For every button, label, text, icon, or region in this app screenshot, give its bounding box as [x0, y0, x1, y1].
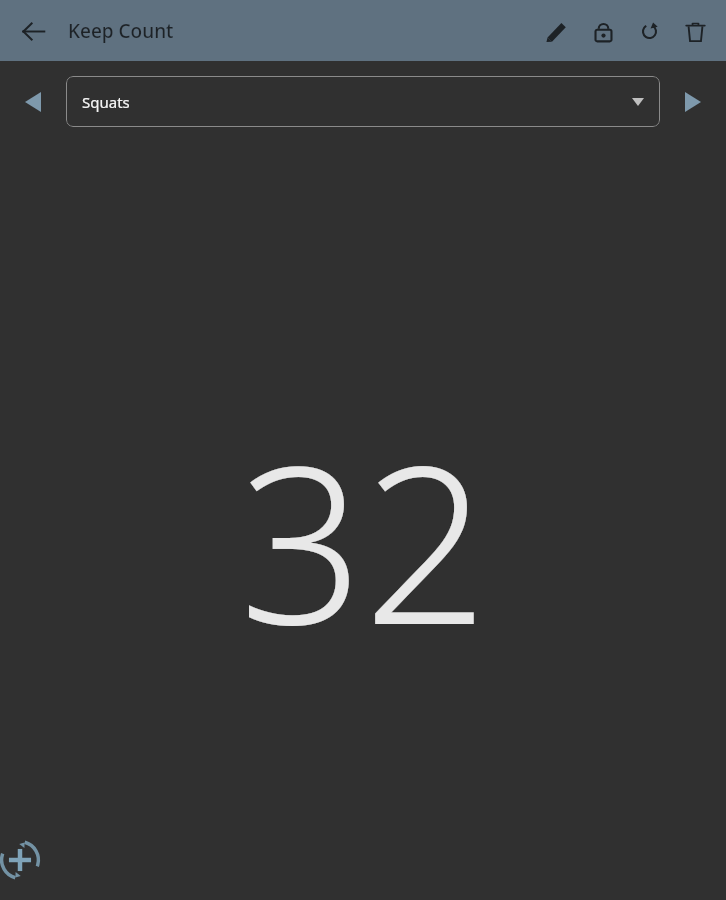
button[interactable]: Next counter [660, 77, 726, 127]
staticText: 32 [239, 391, 488, 688]
staticText: Keep Count [68, 18, 174, 44]
button[interactable]: Squats [66, 76, 660, 127]
button[interactable]: Edit [534, 8, 580, 54]
staticText: Squats [82, 92, 130, 112]
button[interactable]: Reset [626, 8, 672, 54]
button[interactable]: Delete [672, 8, 718, 54]
button[interactable]: Add and reset counter [0, 826, 54, 894]
button[interactable]: Lock [580, 8, 626, 54]
button[interactable]: Back [10, 8, 56, 54]
button[interactable]: Previous counter [0, 77, 66, 127]
